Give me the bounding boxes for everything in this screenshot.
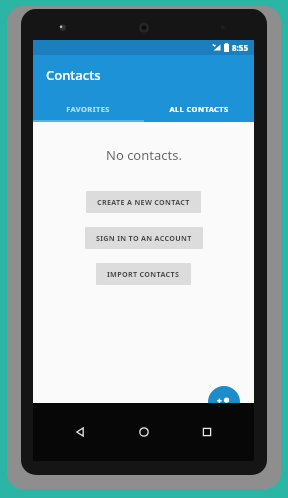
button[interactable]: FAVORITES	[33, 95, 143, 122]
button[interactable]: Back	[63, 415, 97, 449]
button[interactable]: Home	[127, 415, 161, 449]
staticText: 8:55	[232, 42, 248, 53]
staticText: No contacts.	[106, 146, 182, 164]
button[interactable]: Recents	[190, 415, 224, 449]
button[interactable]: ALL CONTACTS	[143, 95, 254, 122]
staticText: IMPORT CONTACTS	[107, 269, 180, 279]
staticText: ALL CONTACTS	[169, 104, 229, 114]
staticText: FAVORITES	[66, 104, 110, 114]
button[interactable]: Add contact	[208, 386, 240, 418]
button[interactable]: CREATE A NEW CONTACT	[86, 191, 201, 213]
button[interactable]: SIGN IN TO AN ACCOUNT	[85, 227, 203, 249]
button[interactable]: IMPORT CONTACTS	[96, 263, 191, 285]
staticText: Contacts	[46, 66, 101, 84]
staticText: CREATE A NEW CONTACT	[97, 197, 190, 207]
staticText: SIGN IN TO AN ACCOUNT	[96, 233, 192, 243]
